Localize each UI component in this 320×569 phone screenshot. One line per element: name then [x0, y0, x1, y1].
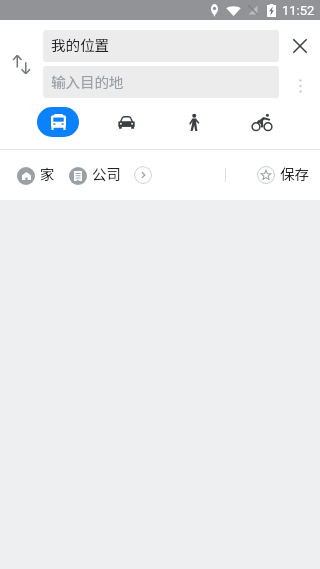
staticText: 家	[40, 163, 55, 184]
button[interactable]: Walking	[160, 99, 228, 145]
button[interactable]: Clear	[286, 32, 314, 60]
button[interactable]: 我的位置	[43, 30, 279, 62]
button[interactable]: Transit	[24, 99, 92, 145]
staticText: 输入目的地	[51, 71, 124, 92]
button[interactable]: 家	[17, 165, 55, 186]
button[interactable]: Cycling	[228, 99, 296, 145]
button[interactable]: 输入目的地	[43, 66, 279, 98]
button[interactable]: Swap origin and destination	[5, 48, 38, 80]
button[interactable]: 保存	[257, 150, 309, 200]
staticText: 我的位置	[51, 34, 109, 55]
staticText: 公司	[92, 163, 121, 184]
button[interactable]: More places	[134, 166, 152, 184]
staticText: 11:52	[282, 3, 315, 18]
staticText: 保存	[280, 163, 309, 184]
button[interactable]: More options	[286, 72, 314, 100]
button[interactable]: 公司	[69, 165, 121, 186]
button[interactable]: Driving	[92, 99, 160, 145]
